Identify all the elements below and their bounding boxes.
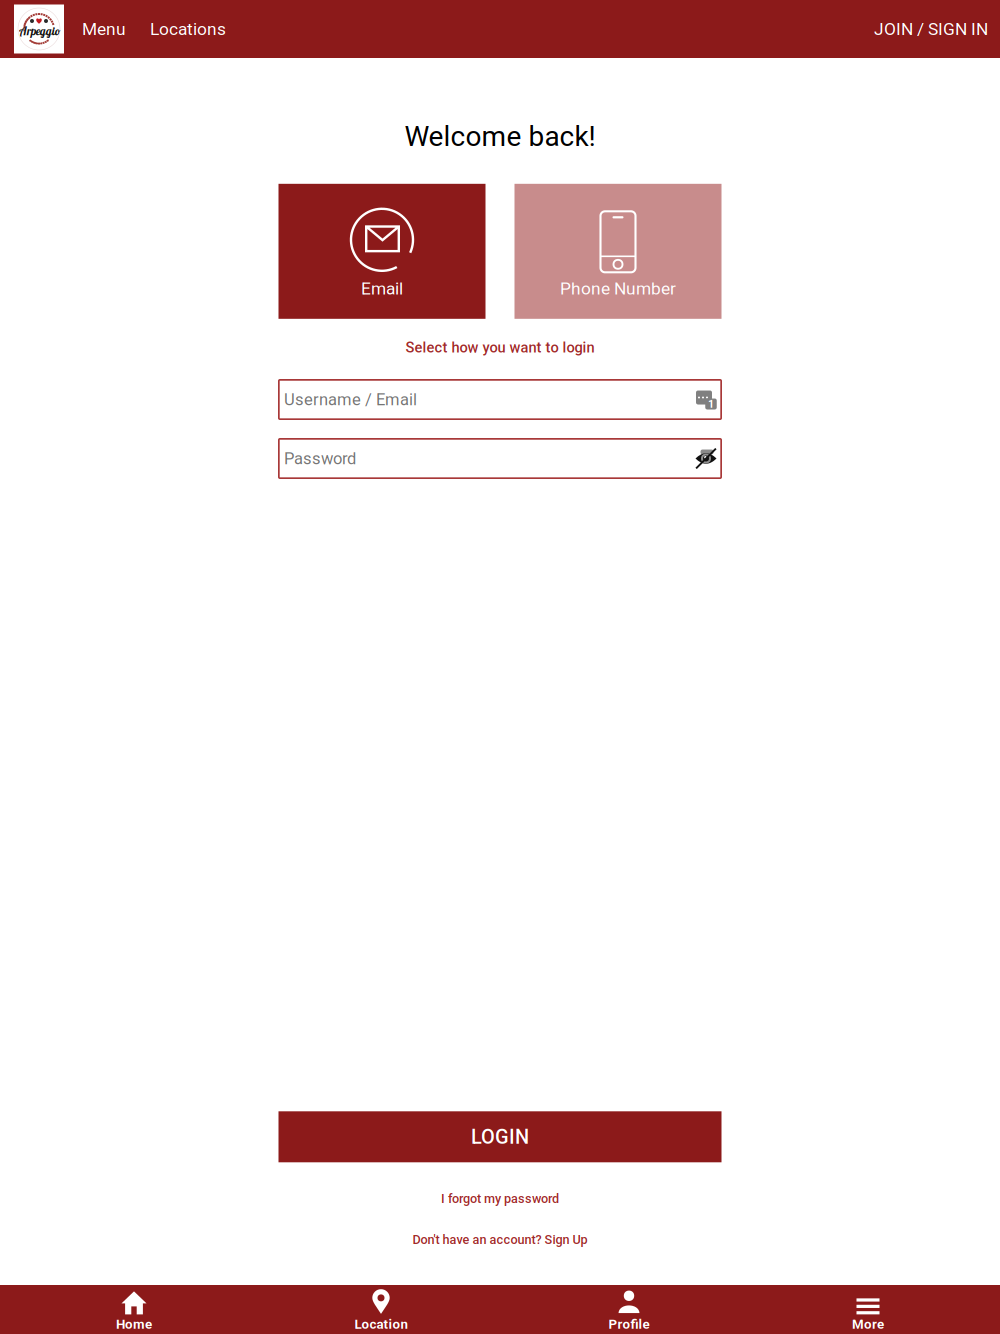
button[interactable]: Arpeggio home bbox=[14, 4, 64, 53]
button[interactable]: Profile bbox=[500, 1285, 750, 1334]
button[interactable]: Home bbox=[0, 1285, 250, 1334]
button[interactable]: Locations bbox=[144, 9, 232, 49]
button[interactable]: LOGIN bbox=[278, 1111, 721, 1162]
staticText: Don't have an account? Sign Up bbox=[412, 1232, 587, 1247]
staticText: Arpeggio bbox=[19, 24, 61, 38]
staticText: More bbox=[852, 1316, 884, 1332]
staticText: Password bbox=[284, 449, 356, 468]
button[interactable]: Location bbox=[250, 1285, 500, 1334]
staticText: I forgot my password bbox=[441, 1191, 559, 1206]
button[interactable]: Phone Number bbox=[514, 184, 721, 319]
staticText: Select how you want to login bbox=[405, 339, 594, 356]
staticText: Menu bbox=[82, 19, 126, 39]
staticText: 1 bbox=[708, 398, 714, 410]
button[interactable]: I forgot my password bbox=[431, 1186, 569, 1211]
button[interactable]: JOIN / SIGN IN bbox=[866, 9, 996, 49]
staticText: Username / Email bbox=[284, 390, 417, 409]
staticText: Location bbox=[354, 1316, 407, 1332]
button[interactable]: Menu bbox=[76, 9, 132, 49]
button[interactable]: Don't have an account? Sign Up bbox=[402, 1227, 597, 1252]
staticText: Profile bbox=[608, 1316, 649, 1332]
button[interactable]: Show password bbox=[695, 447, 717, 469]
button[interactable]: More bbox=[750, 1285, 1000, 1334]
staticText: JOIN / SIGN IN bbox=[874, 19, 988, 39]
staticText: Email bbox=[361, 278, 403, 299]
staticText: Locations bbox=[150, 19, 226, 39]
button[interactable]: Email bbox=[278, 184, 485, 319]
staticText: Phone Number bbox=[560, 278, 676, 299]
staticText: LOGIN bbox=[471, 1125, 529, 1148]
staticText: Welcome back! bbox=[404, 120, 595, 153]
staticText: Home bbox=[116, 1316, 152, 1332]
